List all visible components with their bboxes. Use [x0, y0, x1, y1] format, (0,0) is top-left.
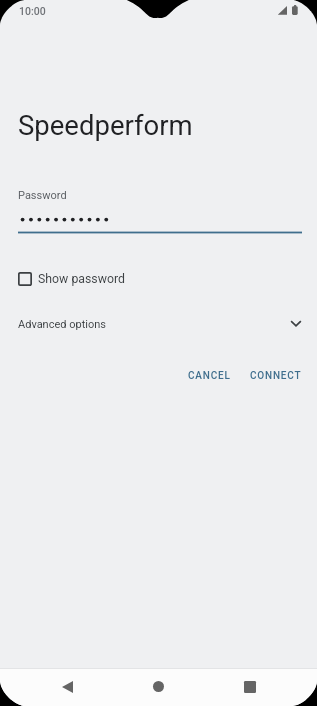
button[interactable]: Back [45, 668, 89, 705]
button[interactable]: Advanced options [0, 310, 317, 338]
button[interactable]: Home [136, 668, 180, 705]
staticText: CONNECT [250, 370, 302, 382]
staticText: Advanced options [18, 318, 106, 331]
button[interactable]: CANCEL [180, 365, 239, 387]
staticText: CANCEL [188, 370, 231, 382]
button[interactable]: Show password [16, 269, 127, 289]
staticText: 10:00 [19, 5, 46, 17]
staticText: Show password [38, 272, 125, 286]
button[interactable]: Recent apps [228, 668, 272, 705]
staticText: Password [18, 189, 67, 202]
button[interactable]: CONNECT [242, 365, 310, 387]
staticText: Speedperform [18, 109, 193, 141]
